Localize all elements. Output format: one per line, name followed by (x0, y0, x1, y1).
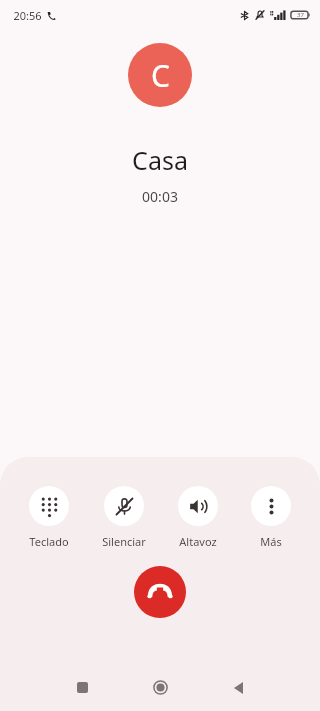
staticText: Silenciar (102, 534, 146, 549)
staticText: Casa (132, 143, 188, 177)
staticText: 20:56 (13, 8, 42, 23)
staticText: 00:03 (142, 187, 178, 206)
button[interactable]: Recientes (56, 664, 108, 711)
staticText: 37 (297, 11, 304, 19)
button[interactable]: Teclado (25, 486, 73, 549)
button[interactable]: Más (247, 486, 295, 549)
button[interactable]: Finalizar llamada (134, 566, 186, 618)
button[interactable]: Altavoz (174, 486, 222, 549)
button[interactable]: Atrás (212, 664, 264, 711)
staticText: Más (260, 534, 282, 549)
button[interactable]: Silenciar (98, 486, 150, 549)
staticText: C (151, 55, 170, 96)
button[interactable]: Inicio (134, 664, 186, 711)
staticText: Altavoz (179, 534, 217, 549)
staticText: Teclado (29, 534, 69, 549)
